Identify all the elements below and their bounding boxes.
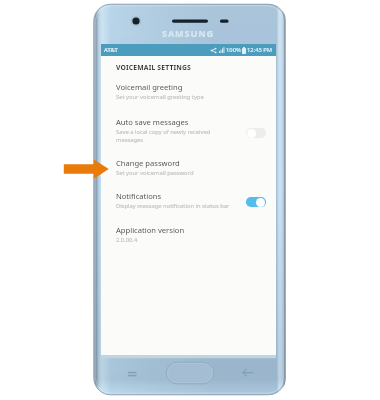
button[interactable]: Toggle Auto save messages (246, 128, 266, 138)
staticText: AT&T (104, 46, 118, 54)
staticText: Change password (116, 158, 180, 168)
staticText: Set your voicemail greeting type (116, 93, 204, 101)
staticText: Display message notification in status b… (116, 202, 230, 210)
staticText: Set your voicemail password (116, 169, 194, 177)
button[interactable]: Toggle Notifications (246, 197, 266, 207)
staticText: Auto save messages (116, 117, 189, 127)
staticText: 12:45 PM (247, 46, 273, 54)
button[interactable]: Voicemail greeting (101, 82, 276, 104)
button[interactable]: Application version (101, 225, 276, 247)
button[interactable]: Change password (101, 158, 276, 180)
staticText: Voicemail greeting (116, 82, 183, 92)
staticText: Notifications (116, 191, 162, 201)
staticText: SAMSUNG (158, 27, 218, 40)
button[interactable]: Notifications (101, 191, 276, 213)
button[interactable]: Home (166, 362, 214, 384)
staticText: Application version (116, 225, 185, 235)
staticText: VOICEMAIL SETTINGS (116, 63, 191, 72)
button[interactable]: Auto save messages (101, 117, 276, 147)
staticText: 2.0.00.4 (116, 236, 138, 244)
staticText: 100% (226, 46, 241, 54)
staticText: Save a local copy of newly received (116, 128, 211, 136)
staticText: messages (116, 136, 144, 144)
